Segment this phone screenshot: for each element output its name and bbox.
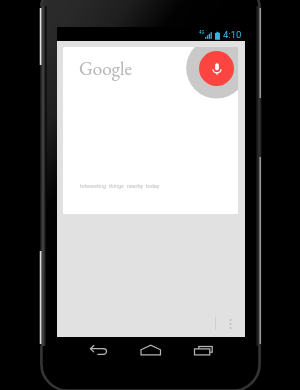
staticText: Interesting things nearby today (80, 183, 160, 189)
button[interactable]: Recent apps (182, 337, 245, 364)
staticText: Google (79, 56, 132, 81)
button[interactable]: Home (119, 337, 182, 364)
staticText: 4:10 (223, 29, 242, 40)
button[interactable]: Voice search (199, 51, 234, 86)
staticText: 4G (199, 30, 205, 35)
button[interactable]: More options (223, 316, 238, 331)
button[interactable]: Back (57, 337, 119, 364)
